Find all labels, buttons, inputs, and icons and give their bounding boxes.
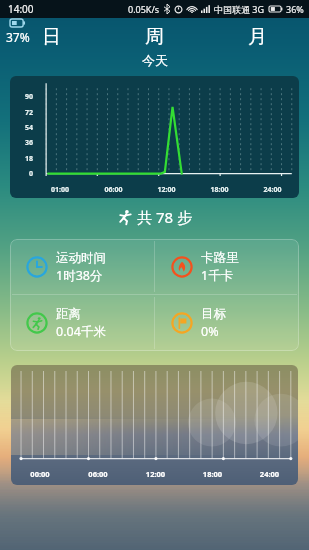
button[interactable]: 月 xyxy=(206,22,309,52)
staticText: 距离 xyxy=(56,306,81,322)
staticText: 24:00 xyxy=(241,469,298,479)
staticText: 18 xyxy=(11,154,33,164)
button[interactable]: 00:00 xyxy=(11,365,298,485)
button[interactable]: 周 xyxy=(103,22,206,52)
staticText: 运动时间 xyxy=(56,250,106,266)
other: Calories xyxy=(171,256,193,278)
staticText: 01:00 xyxy=(33,185,87,195)
other: Goal xyxy=(171,312,193,334)
button[interactable]: 日 xyxy=(0,22,103,52)
staticText: 06:00 xyxy=(87,185,140,195)
staticText: 36% xyxy=(286,3,304,15)
staticText: 18:00 xyxy=(184,469,241,479)
staticText: 卡路里 xyxy=(201,250,239,266)
staticText: 共 78 步 xyxy=(137,207,192,227)
staticText: 今天 xyxy=(142,52,168,68)
staticText: 06:00 xyxy=(69,469,127,479)
staticText: 90 xyxy=(11,92,33,102)
staticText: 36 xyxy=(11,138,33,148)
staticText: 12:00 xyxy=(140,185,193,195)
button[interactable]: Exercise time xyxy=(10,239,154,294)
staticText: 18:00 xyxy=(193,185,246,195)
staticText: 0% xyxy=(201,323,219,340)
staticText: 37% xyxy=(6,29,30,45)
staticText: 中国联通 3G xyxy=(214,3,265,15)
staticText: 24:00 xyxy=(246,185,299,195)
staticText: 月 xyxy=(248,25,267,49)
button[interactable]: Calories xyxy=(155,239,299,294)
button[interactable]: Goal xyxy=(155,295,299,351)
staticText: 12:00 xyxy=(127,469,184,479)
staticText: 目标 xyxy=(201,306,226,322)
other: Steps xyxy=(117,209,133,225)
staticText: 54 xyxy=(11,123,33,133)
staticText: 周 xyxy=(145,25,164,49)
staticText: 72 xyxy=(11,108,33,118)
staticText: 0 xyxy=(11,169,33,179)
staticText: 1千卡 xyxy=(201,267,234,284)
staticText: 0.04千米 xyxy=(56,323,106,340)
staticText: 0.05K/s xyxy=(128,3,160,15)
button[interactable]: 90 xyxy=(10,76,299,198)
staticText: 日 xyxy=(42,25,61,49)
other: Distance xyxy=(26,312,48,334)
button[interactable]: Distance xyxy=(10,295,154,351)
staticText: 1时38分 xyxy=(56,267,103,284)
staticText: 14:00 xyxy=(8,2,34,16)
other: Exercise time xyxy=(26,256,48,278)
staticText: 00:00 xyxy=(11,469,69,479)
